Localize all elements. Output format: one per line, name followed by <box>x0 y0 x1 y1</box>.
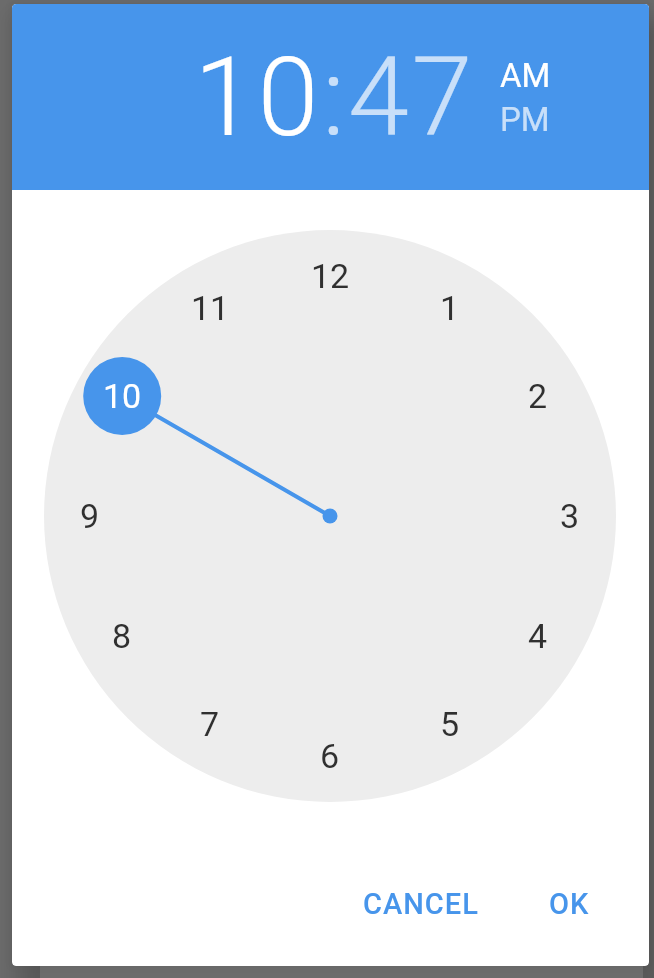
staticText: 4 <box>528 616 548 656</box>
staticText: AM <box>500 56 551 95</box>
staticText: 8 <box>112 616 132 656</box>
staticText: 11 <box>191 288 230 328</box>
button[interactable]: CANCEL <box>341 878 501 930</box>
button[interactable]: 4 <box>498 606 578 666</box>
staticText: 12 <box>311 256 350 296</box>
button[interactable]: OK <box>519 878 619 930</box>
button[interactable]: 5 <box>410 694 490 754</box>
staticText: 7 <box>200 704 220 744</box>
button[interactable]: 9 <box>50 486 130 546</box>
button[interactable]: AM <box>485 53 565 97</box>
button[interactable]: 3 <box>530 486 610 546</box>
button[interactable]: 12 <box>290 246 370 306</box>
staticText: CANCEL <box>363 887 479 921</box>
staticText: 47 <box>348 33 476 162</box>
button[interactable]: 7 <box>170 694 250 754</box>
button[interactable]: 10 <box>82 366 162 426</box>
button[interactable]: 2 <box>498 366 578 426</box>
staticText: 6 <box>320 736 340 776</box>
staticText: 2 <box>528 376 548 416</box>
button[interactable]: 11 <box>170 278 250 338</box>
button[interactable]: 8 <box>82 606 162 666</box>
staticText: 5 <box>440 704 460 744</box>
staticText: 10 <box>194 33 322 162</box>
button[interactable]: 6 <box>290 726 370 786</box>
button[interactable]: PM <box>485 97 565 141</box>
staticText: OK <box>549 887 590 921</box>
staticText: 3 <box>560 496 580 536</box>
staticText: 9 <box>80 496 100 536</box>
staticText: 1 <box>440 288 460 328</box>
staticText: 10 <box>103 376 142 416</box>
staticText: PM <box>500 100 550 139</box>
staticText: : <box>322 33 348 162</box>
button[interactable]: 1 <box>410 278 490 338</box>
